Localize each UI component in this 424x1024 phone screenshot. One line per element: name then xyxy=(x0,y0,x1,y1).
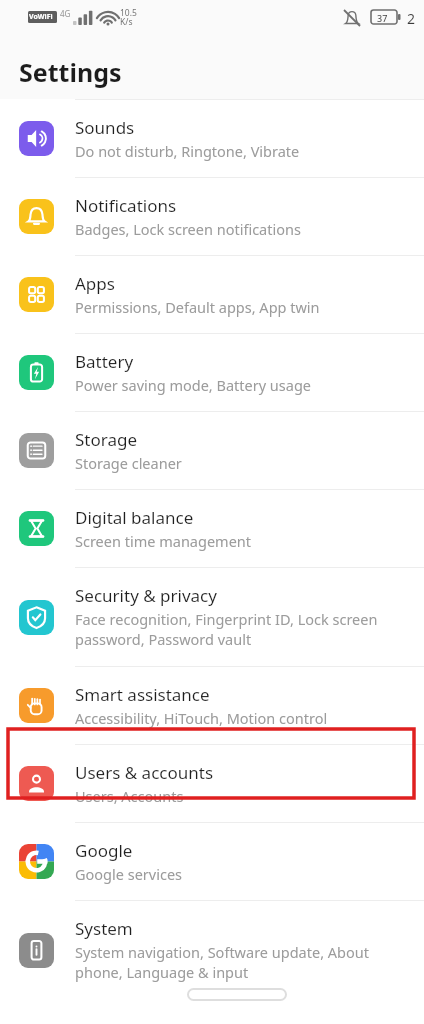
button[interactable]: Storage xyxy=(0,412,424,489)
staticText: Settings xyxy=(19,55,122,89)
staticText: System navigation, Software update, Abou… xyxy=(75,942,410,983)
button[interactable]: Sounds xyxy=(0,100,424,177)
button[interactable]: Apps xyxy=(0,256,424,333)
button[interactable]: Smart assistance xyxy=(0,667,424,744)
staticText: 10.5 K/s xyxy=(120,7,137,28)
staticText: Screen time management xyxy=(75,531,251,551)
staticText: Google services xyxy=(75,864,183,884)
button[interactable]: Users & accounts xyxy=(0,745,424,822)
staticText: Do not disturb, Ringtone, Vibrate xyxy=(75,141,300,161)
button[interactable]: Notifications xyxy=(0,178,424,255)
staticText: Users, Accounts xyxy=(75,786,184,806)
button[interactable]: Digital balance xyxy=(0,490,424,567)
staticText: Security & privacy xyxy=(75,584,217,607)
button[interactable]: System xyxy=(0,901,424,999)
staticText: Storage xyxy=(75,428,138,451)
staticText: Smart assistance xyxy=(75,683,210,706)
staticText: Sounds xyxy=(75,116,135,139)
staticText: Users & accounts xyxy=(75,761,214,784)
button[interactable]: Security & privacy xyxy=(0,568,424,666)
staticText: Permissions, Default apps, App twin xyxy=(75,297,320,317)
staticText: Apps xyxy=(75,272,115,295)
staticText: Face recognition, Fingerprint ID, Lock s… xyxy=(75,609,410,650)
staticText: 4G xyxy=(60,8,71,19)
button[interactable]: Google xyxy=(0,823,424,900)
staticText: Badges, Lock screen notifications xyxy=(75,219,301,239)
staticText: Google xyxy=(75,839,133,862)
staticText: Notifications xyxy=(75,194,177,217)
staticText: Digital balance xyxy=(75,506,194,529)
staticText: Accessibility, HiTouch, Motion control xyxy=(75,708,328,728)
staticText: Storage cleaner xyxy=(75,453,182,473)
staticText: System xyxy=(75,917,133,940)
staticText: Power saving mode, Battery usage xyxy=(75,375,312,395)
staticText: 2 xyxy=(407,9,416,28)
staticText: Battery xyxy=(75,350,134,373)
staticText: VoWiFi xyxy=(29,12,53,22)
button[interactable]: Battery xyxy=(0,334,424,411)
staticText: 37 xyxy=(377,12,388,24)
